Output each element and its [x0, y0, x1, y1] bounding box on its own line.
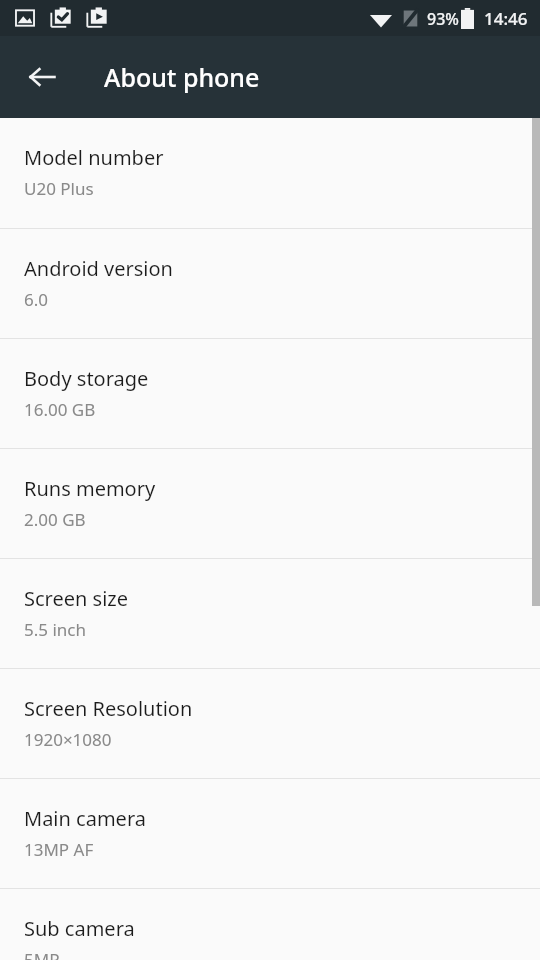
staticText: 6.0: [24, 288, 49, 311]
staticText: Screen size: [24, 585, 128, 612]
staticText: Android version: [24, 255, 173, 282]
button[interactable]: Sub camera: [0, 889, 540, 960]
staticText: Runs memory: [24, 475, 156, 502]
staticText: 5MP: [24, 948, 60, 960]
staticText: About phone: [104, 60, 260, 94]
staticText: Main camera: [24, 805, 146, 832]
button[interactable]: Back: [14, 49, 70, 105]
staticText: 1920×1080: [24, 728, 112, 751]
staticText: 14:46: [484, 7, 528, 30]
staticText: Body storage: [24, 365, 149, 392]
staticText: U20 Plus: [24, 177, 94, 200]
button[interactable]: Screen Resolution: [0, 669, 540, 778]
staticText: 2.00 GB: [24, 508, 86, 531]
staticText: Model number: [24, 144, 164, 171]
staticText: 93%: [427, 8, 459, 30]
button[interactable]: Android version: [0, 229, 540, 338]
staticText: Screen Resolution: [24, 695, 193, 722]
button[interactable]: Body storage: [0, 339, 540, 448]
button[interactable]: Main camera: [0, 779, 540, 888]
button[interactable]: Model number: [0, 118, 540, 228]
staticText: Sub camera: [24, 915, 135, 942]
staticText: 5.5 inch: [24, 618, 86, 641]
button[interactable]: Runs memory: [0, 449, 540, 558]
button[interactable]: Screen size: [0, 559, 540, 668]
staticText: 13MP AF: [24, 838, 94, 861]
staticText: 16.00 GB: [24, 398, 96, 421]
